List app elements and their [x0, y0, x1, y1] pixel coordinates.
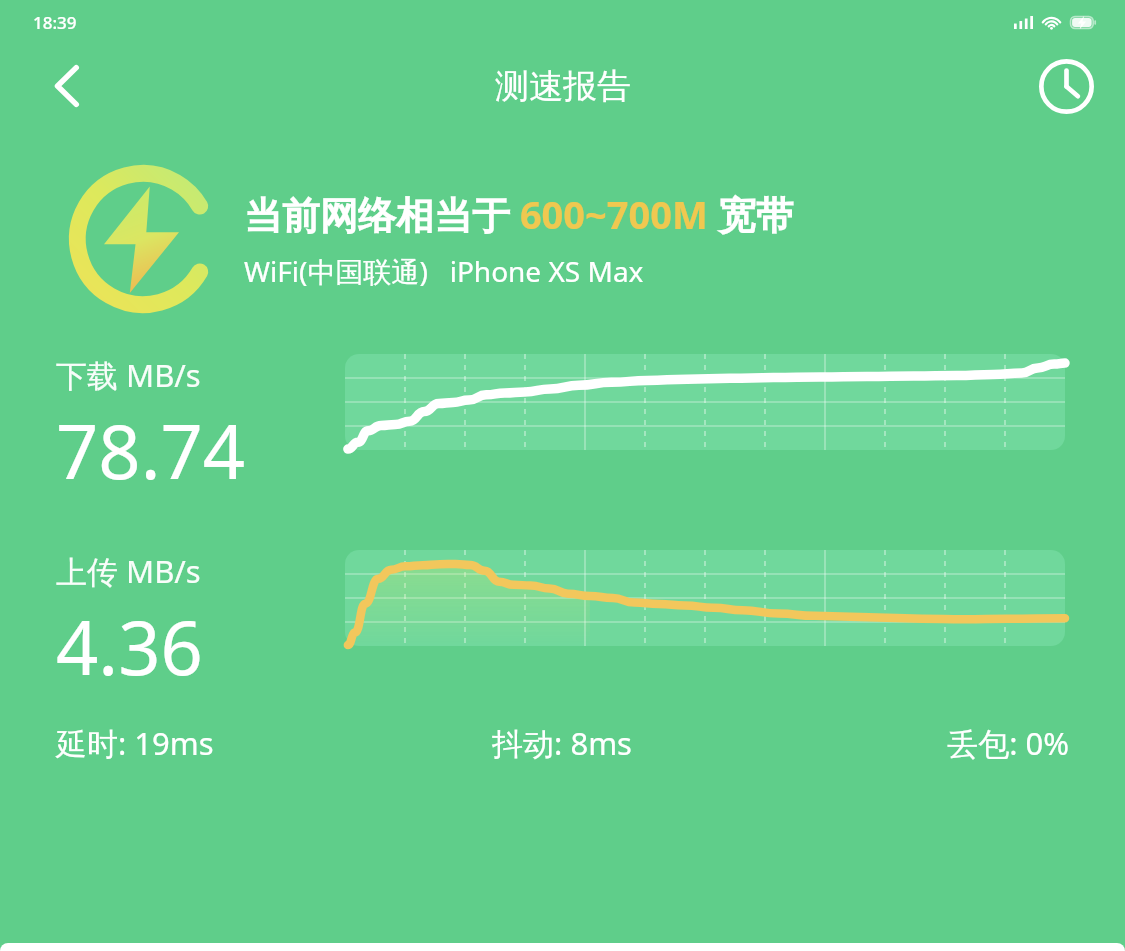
staticText: 78.74: [56, 400, 246, 501]
staticText: 上传 MB/s: [56, 550, 201, 592]
staticText: 下载 MB/s: [56, 354, 201, 396]
button[interactable]: Back: [40, 59, 94, 113]
staticText: 延时: 19ms: [56, 722, 393, 764]
staticText: 当前网络相当于 600~700M 宽带: [244, 188, 794, 240]
staticText: 4.36: [56, 596, 203, 697]
staticText: 丢包: 0%: [731, 722, 1069, 764]
staticText: 抖动: 8ms: [393, 722, 731, 764]
staticText: 测速报告: [495, 65, 631, 108]
staticText: WiFi(中国联通) iPhone XS Max: [244, 252, 644, 290]
button[interactable]: History: [1035, 55, 1097, 117]
staticText: 18:39: [33, 11, 77, 34]
